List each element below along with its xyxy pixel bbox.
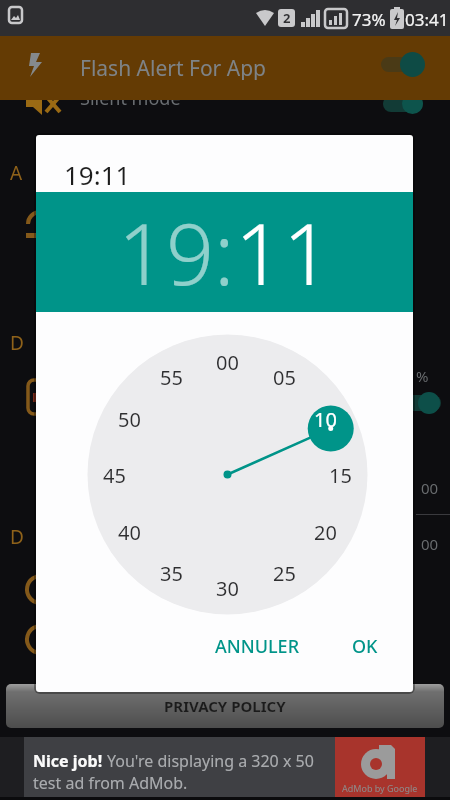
staticText: 19:	[118, 195, 235, 309]
staticText: %	[416, 366, 429, 384]
staticText: 11	[235, 195, 331, 309]
staticText: 30	[216, 575, 239, 599]
button[interactable]: PRIVACY POLICY	[6, 684, 444, 728]
staticText: test ad from AdMob.	[33, 772, 188, 794]
staticText: D	[10, 524, 24, 546]
staticText: 00	[421, 478, 439, 496]
staticText: Nice job!	[33, 750, 107, 772]
staticText: 45	[103, 462, 126, 486]
staticText: D	[10, 330, 24, 352]
staticText: PRIVACY POLICY	[164, 696, 286, 716]
button[interactable]	[381, 57, 419, 72]
staticText: 40	[118, 519, 141, 543]
staticText: You're displaying a 320 x 50	[107, 750, 314, 772]
staticText: 50	[118, 406, 141, 430]
staticText: AdMob by Google	[342, 782, 418, 794]
staticText: 73%	[352, 8, 386, 28]
staticText: 55	[160, 364, 183, 388]
staticText: 35	[160, 560, 183, 584]
staticText: 10	[314, 406, 337, 430]
staticText: 00	[216, 349, 239, 373]
button[interactable]: Nice job!	[24, 737, 335, 797]
staticText: OK	[352, 634, 378, 659]
staticText: 2	[283, 9, 291, 27]
staticText: 05	[273, 364, 296, 388]
staticText: 25	[273, 560, 296, 584]
staticText: Silent mode	[80, 86, 181, 106]
staticText: 00	[421, 534, 439, 552]
button[interactable]: AdMob by Google	[335, 737, 425, 797]
button[interactable]: OK	[338, 631, 392, 661]
staticText: ANNULER	[215, 634, 300, 659]
staticText: Flash Alert For App	[80, 54, 266, 80]
staticText: 19:11	[64, 157, 131, 192]
staticText: 03:41	[405, 8, 449, 28]
staticText: A	[10, 160, 23, 182]
staticText: 20	[314, 519, 337, 543]
staticText: 15	[329, 462, 352, 486]
button[interactable]: ANNULER	[196, 631, 318, 661]
